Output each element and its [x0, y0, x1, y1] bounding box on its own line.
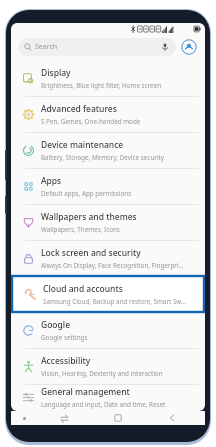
staticText: Samsung Cloud, Backup and restore, Smart… [43, 297, 187, 306]
button[interactable]: Home [91, 411, 145, 425]
button[interactable]: Accessibility [11, 348, 205, 384]
staticText: Advanced features [41, 103, 117, 115]
button[interactable]: Google [11, 312, 205, 348]
staticText: Battery, Storage, Memory, Device securit… [41, 153, 164, 162]
button[interactable]: Account [180, 38, 198, 56]
button[interactable]: Search [18, 38, 176, 56]
button[interactable]: Device maintenance [11, 132, 205, 168]
button[interactable]: Apps [11, 168, 205, 204]
staticText: Wallpapers, Themes, Icons [41, 225, 120, 234]
staticText: Wallpapers and themes [41, 211, 137, 223]
staticText: Cloud and accounts [43, 283, 123, 295]
staticText: Vision, Hearing, Dexterity and interacti… [41, 369, 163, 378]
button[interactable]: Wallpapers and themes [11, 204, 205, 240]
button[interactable]: Cloud and accounts [13, 277, 203, 311]
staticText: Search [35, 42, 58, 52]
staticText: Lock screen and security [41, 247, 141, 259]
staticText: Accessibility [41, 355, 91, 367]
staticText: Always On Display, Face Recognition, Fin… [41, 261, 184, 270]
button[interactable]: Voice search [160, 42, 170, 52]
button[interactable]: Back [145, 411, 199, 425]
button[interactable]: General management [11, 384, 205, 411]
staticText: Apps [41, 175, 62, 187]
button[interactable]: Lock screen and security [11, 240, 205, 276]
staticText: Device maintenance [41, 139, 124, 151]
staticText: Google settings [41, 333, 88, 342]
staticText: Language and input, Date and time, Reset [41, 400, 166, 409]
staticText: General management [41, 386, 130, 398]
button[interactable]: Advanced features [11, 96, 205, 132]
staticText: Google [41, 319, 71, 331]
button[interactable]: Display [11, 60, 205, 96]
staticText: S Pen, Games, One-handed mode [41, 117, 141, 126]
staticText: Brightness, Blue light filter, Home scre… [41, 81, 162, 90]
button[interactable]: Recent apps [37, 411, 91, 425]
staticText: Default apps, App permissions [41, 189, 132, 198]
staticText: Display [41, 67, 71, 79]
